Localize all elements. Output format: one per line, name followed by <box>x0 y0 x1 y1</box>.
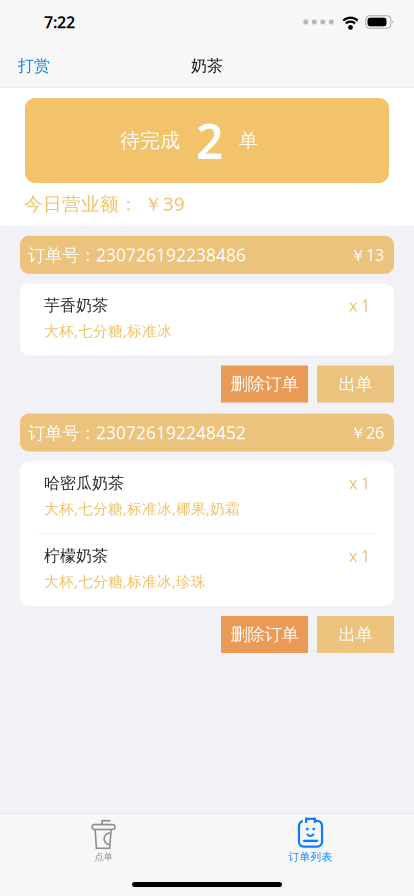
staticText: ￥26 <box>350 422 384 443</box>
button[interactable]: 删除订单 <box>221 365 308 402</box>
staticText: 7:22 <box>44 11 75 33</box>
staticText: 大杯,七分糖,标准冰 <box>44 321 172 340</box>
staticText: 今日营业额： ￥39 <box>24 191 185 216</box>
button[interactable]: 打赏 <box>0 44 68 88</box>
staticText: 删除订单 <box>230 373 298 395</box>
staticText: 奶茶 <box>191 56 223 76</box>
staticText: 点单 <box>94 851 112 863</box>
staticText: 出单 <box>338 373 372 395</box>
staticText: 待完成 <box>120 128 180 153</box>
staticText: 哈密瓜奶茶 <box>44 473 124 493</box>
staticText: 出单 <box>338 624 372 645</box>
staticText: 大杯,七分糖,标准冰,珍珠 <box>44 571 206 591</box>
staticText: x 1 <box>349 472 370 494</box>
staticText: 订单号：230726192248452 <box>28 421 246 444</box>
staticText: 芋香奶茶 <box>44 296 108 315</box>
staticText: x 1 <box>349 295 370 316</box>
button[interactable]: 点单 <box>0 813 207 863</box>
button[interactable]: 订单列表 <box>207 812 414 863</box>
button[interactable]: 出单 <box>317 365 394 402</box>
staticText: x 1 <box>349 545 370 566</box>
staticText: 2 <box>196 109 223 172</box>
staticText: 订单列表 <box>288 850 332 863</box>
staticText: 单 <box>239 129 258 152</box>
button[interactable]: 删除订单 <box>221 616 308 653</box>
staticText: 删除订单 <box>230 624 298 645</box>
staticText: 大杯,七分糖,标准冰,椰果,奶霜 <box>44 499 240 518</box>
staticText: 订单号：230726192238486 <box>28 243 246 266</box>
staticText: 打赏 <box>18 56 50 76</box>
button[interactable]: 出单 <box>317 616 394 653</box>
staticText: ￥13 <box>350 244 384 265</box>
staticText: 柠檬奶茶 <box>44 546 108 566</box>
